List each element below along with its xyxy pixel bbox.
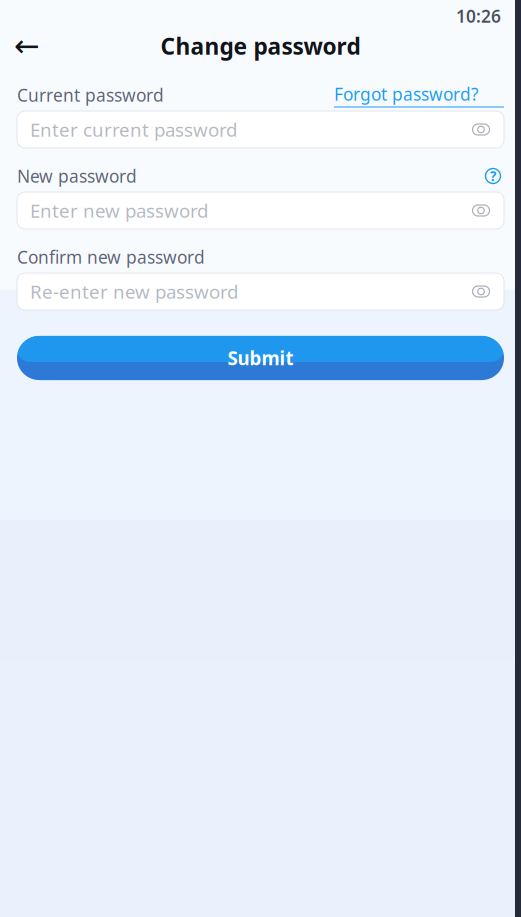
staticText: ? [490,167,496,185]
staticText: Re-enter new password [30,279,238,304]
staticText: ← [14,29,40,63]
button[interactable]: Back [5,26,49,66]
staticText: New password [17,164,137,187]
staticText: Forgot password? [334,82,479,105]
button[interactable]: Password requirements help [482,166,504,186]
staticText: Confirm new password [17,245,205,268]
button[interactable]: Show password [464,273,498,310]
staticText: Current password [17,83,164,106]
staticText: Submit [227,346,293,370]
staticText: 10:26 [456,4,501,27]
button[interactable]: Forgot password? [334,81,504,108]
staticText: Enter current password [30,117,237,142]
button[interactable]: Show password [464,192,498,229]
staticText: Change password [160,31,360,61]
staticText: Enter new password [30,198,208,223]
button[interactable]: Submit [0,332,521,384]
button[interactable]: Show password [464,111,498,148]
